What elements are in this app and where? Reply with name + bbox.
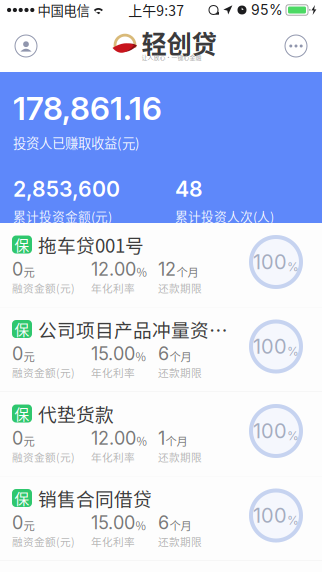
staticText: 轻创贷	[141, 24, 216, 61]
staticText: 6	[158, 343, 169, 365]
staticText: 个月	[169, 517, 191, 533]
staticText: 元	[23, 348, 34, 364]
staticText: 0	[12, 512, 23, 534]
staticText: 15.00	[91, 512, 135, 534]
staticText: %	[136, 264, 146, 280]
staticText: 6	[158, 512, 169, 534]
staticText: 上午9:37	[128, 0, 184, 20]
staticText: 还款期限	[158, 449, 202, 464]
staticText: 代垫货款	[38, 400, 114, 427]
staticText: 还款期限	[158, 364, 202, 380]
staticText: 年化利率	[91, 533, 135, 549]
staticText: 融资金额(元)	[12, 280, 75, 295]
staticText: 融资金额(元)	[12, 449, 75, 464]
staticText: %	[287, 260, 299, 274]
staticText: 12.00	[91, 427, 136, 449]
button[interactable]: 保	[0, 476, 322, 561]
staticText: 100	[253, 250, 287, 274]
staticText: 12.00	[91, 258, 136, 280]
staticText: 保	[14, 403, 29, 424]
staticText: 让人放心·一键心金融	[141, 53, 201, 61]
staticText: %	[287, 513, 299, 528]
staticText: 销售合同借贷	[38, 484, 152, 511]
staticText: 1	[158, 427, 165, 449]
staticText: 保	[14, 318, 29, 340]
staticText: 个月	[169, 348, 191, 364]
staticText: 元	[23, 433, 34, 449]
staticText: 95%	[251, 1, 283, 18]
staticText: 48	[175, 176, 203, 202]
staticText: 2,853,600	[13, 176, 120, 202]
staticText: 中国电信	[34, 0, 92, 20]
staticText: %	[136, 433, 146, 449]
staticText: 12	[158, 258, 176, 280]
staticText: 个月	[176, 264, 198, 280]
staticText: 拖车贷001号	[38, 231, 144, 258]
staticText: 融资金额(元)	[12, 364, 75, 380]
staticText: 0	[12, 343, 23, 365]
staticText: 个月	[165, 433, 187, 449]
staticText: 投资人已赚取收益(元)	[13, 133, 140, 152]
staticText: 元	[23, 264, 34, 280]
staticText: %	[287, 429, 299, 443]
staticText: 还款期限	[158, 280, 202, 295]
staticText: 还款期限	[158, 533, 202, 549]
staticText: %	[287, 344, 299, 359]
staticText: 100	[253, 334, 287, 359]
button[interactable]: 保	[0, 392, 322, 476]
staticText: %	[135, 517, 145, 533]
staticText: 融资金额(元)	[12, 533, 75, 549]
staticText: 公司项目产品冲量资金…	[38, 315, 241, 342]
staticText: 年化利率	[91, 280, 135, 295]
staticText: 保	[14, 234, 29, 255]
staticText: 100	[253, 419, 287, 443]
staticText: 15.00	[91, 343, 135, 365]
button[interactable]: 保	[0, 223, 322, 307]
button[interactable]: Account	[4, 24, 48, 68]
staticText: 元	[23, 517, 34, 533]
staticText: %	[135, 348, 145, 364]
staticText: 累计投资金额(元)	[13, 207, 112, 225]
staticText: 累计投资人次(人)	[175, 207, 274, 225]
staticText: 0	[12, 427, 23, 449]
staticText: 年化利率	[91, 449, 135, 464]
button[interactable]: More	[274, 24, 318, 68]
button[interactable]: 保	[0, 307, 322, 392]
staticText: 0	[12, 258, 23, 280]
staticText: 年化利率	[91, 364, 135, 380]
staticText: 100	[253, 503, 287, 528]
staticText: 178,861.16	[13, 89, 162, 128]
staticText: 保	[14, 487, 29, 509]
